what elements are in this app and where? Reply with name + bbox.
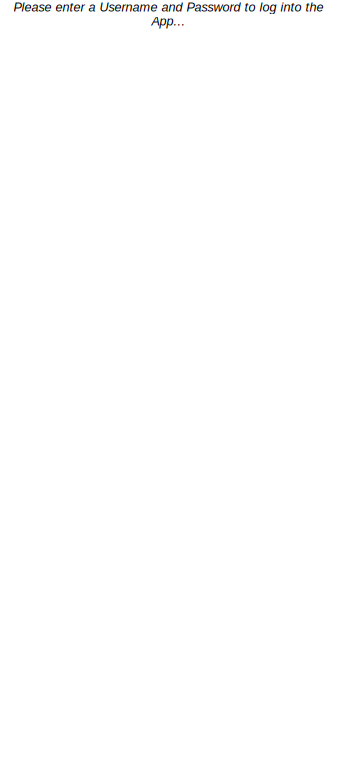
staticText: App... [151, 14, 185, 28]
staticText: Please enter a Username and Password to … [13, 0, 323, 14]
